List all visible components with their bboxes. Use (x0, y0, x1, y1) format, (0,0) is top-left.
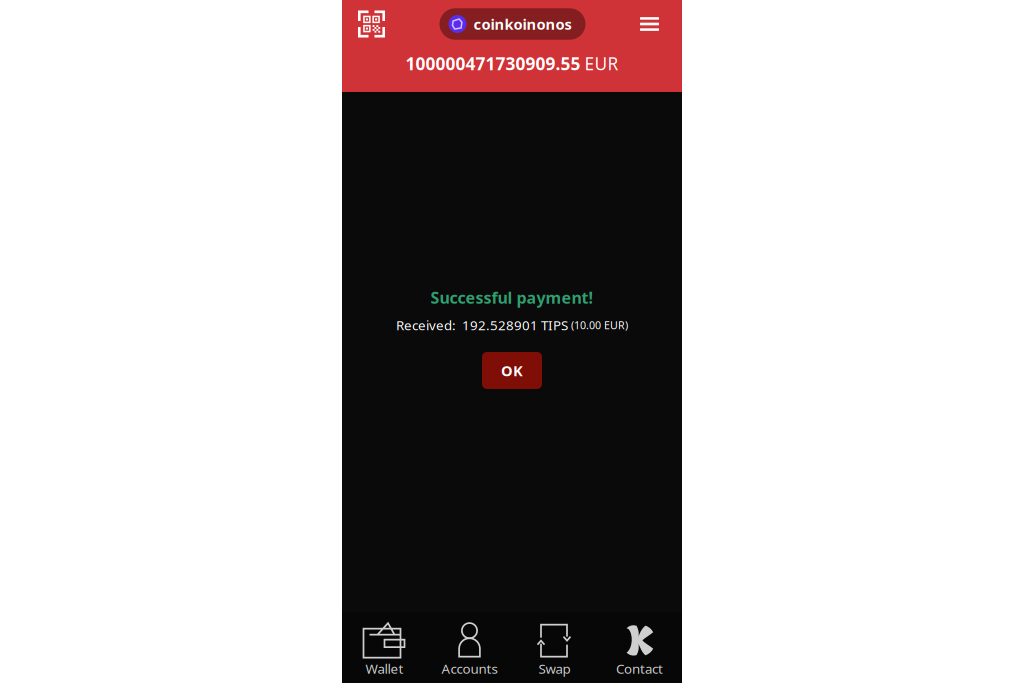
staticText: Contact (616, 660, 663, 677)
button[interactable]: Wallet (342, 613, 427, 682)
button[interactable]: Swap (512, 613, 597, 682)
staticText: 100000471730909.55 (405, 52, 580, 75)
staticText: OK (501, 361, 523, 380)
staticText: EUR (584, 52, 618, 75)
staticText: Accounts (441, 660, 497, 677)
button[interactable]: OK (482, 352, 542, 389)
button[interactable]: Accounts (427, 613, 512, 682)
staticText: Successful payment! (430, 287, 593, 308)
staticText: coinkoinonos (473, 14, 571, 34)
staticText: (10.00 EUR) (571, 318, 628, 332)
button[interactable]: Scan QR code (342, 10, 393, 37)
staticText: Swap (538, 660, 570, 677)
button[interactable]: Menu (632, 16, 682, 31)
button[interactable]: Contact (597, 613, 682, 682)
staticText: Wallet (365, 660, 403, 677)
staticText: Received: 192.528901 TIPS (396, 316, 571, 334)
button[interactable]: coinkoinonos (439, 8, 585, 40)
